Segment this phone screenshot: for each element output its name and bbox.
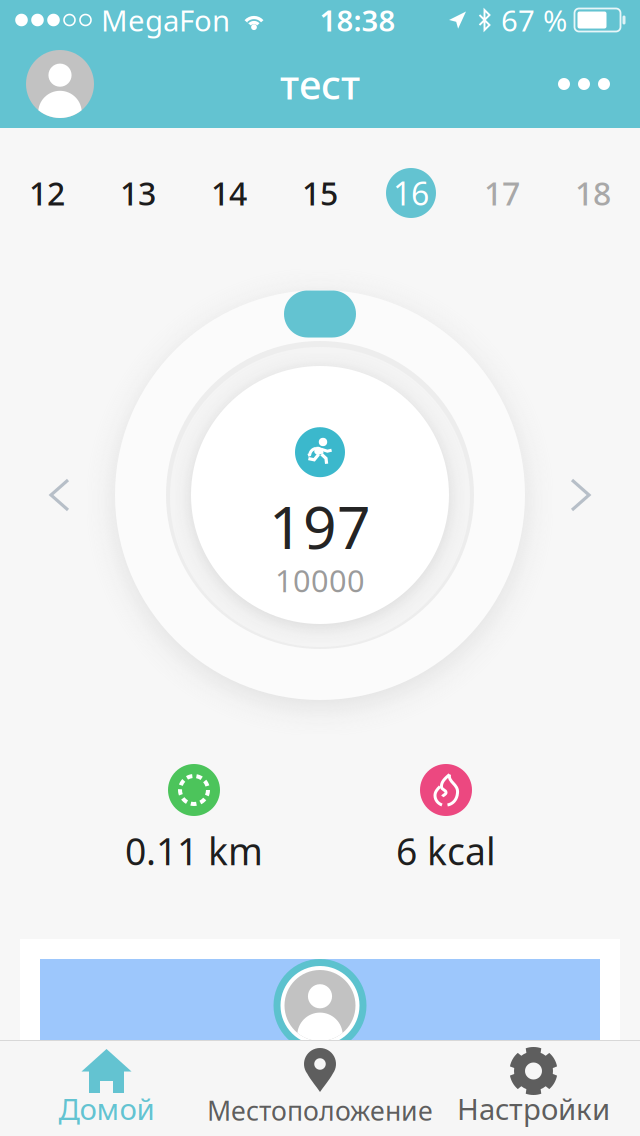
button[interactable]: Profile [0, 40, 110, 128]
staticText: Настройки [457, 1089, 610, 1128]
staticText: 17 [484, 172, 520, 214]
button[interactable]: 15 [274, 160, 365, 226]
button[interactable]: Next day [549, 458, 612, 532]
staticText: тест [280, 57, 360, 110]
button[interactable]: 13 [92, 160, 183, 226]
button[interactable]: 6 kcal [320, 764, 572, 876]
staticText: 10000 [275, 560, 365, 601]
staticText: 14 [211, 172, 247, 214]
staticText: Домой [58, 1089, 154, 1128]
staticText: 18:38 [319, 0, 395, 39]
staticText: 197 [269, 487, 371, 565]
staticText: Местоположение [207, 1093, 433, 1128]
staticText: 67 % [501, 0, 567, 39]
button[interactable]: Previous day [28, 458, 91, 532]
button[interactable]: 12 [1, 160, 92, 226]
button[interactable]: 0.11 km [68, 764, 320, 876]
staticText: 13 [120, 172, 156, 214]
button[interactable]: Домой [0, 1040, 213, 1136]
staticText: MegaFon [101, 0, 230, 39]
button[interactable]: 17 [456, 160, 547, 226]
button[interactable]: 18 [547, 160, 638, 226]
staticText: 0.11 km [125, 826, 263, 876]
staticText: 16 [393, 172, 429, 214]
button[interactable]: 16 [365, 160, 456, 226]
staticText: 12 [29, 172, 65, 214]
staticText: 15 [302, 172, 338, 214]
button[interactable]: Настройки [427, 1040, 640, 1136]
staticText: 6 kcal [396, 826, 496, 876]
button[interactable]: Местоположение [213, 1040, 427, 1136]
staticText: 18 [575, 172, 611, 214]
button[interactable]: 14 [183, 160, 274, 226]
button[interactable]: More options [538, 40, 640, 128]
